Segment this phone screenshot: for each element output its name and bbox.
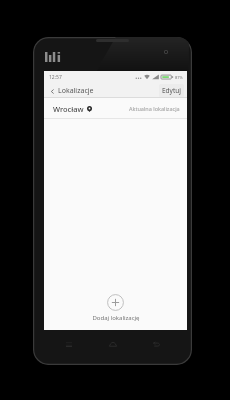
staticText: 12:57 bbox=[49, 74, 62, 81]
other: Dodaj lokalizację bbox=[107, 294, 124, 311]
other: Back bbox=[50, 89, 55, 94]
button[interactable]: Back bbox=[48, 84, 96, 98]
staticText: Wrocław bbox=[53, 104, 84, 114]
button[interactable]: Back bbox=[148, 336, 164, 352]
staticText: 87% bbox=[175, 75, 183, 80]
staticText: Aktualna lokalizacja bbox=[129, 105, 180, 112]
button[interactable]: Dodaj lokalizację bbox=[44, 292, 187, 324]
staticText: Edytuj bbox=[162, 86, 181, 95]
button[interactable]: Home bbox=[105, 336, 121, 352]
staticText: Lokalizacje bbox=[58, 86, 94, 96]
staticText: Dodaj lokalizację bbox=[92, 314, 140, 322]
button[interactable]: Wrocław bbox=[44, 98, 187, 119]
button[interactable]: Edytuj bbox=[159, 84, 184, 97]
button[interactable]: Recents bbox=[61, 336, 77, 352]
